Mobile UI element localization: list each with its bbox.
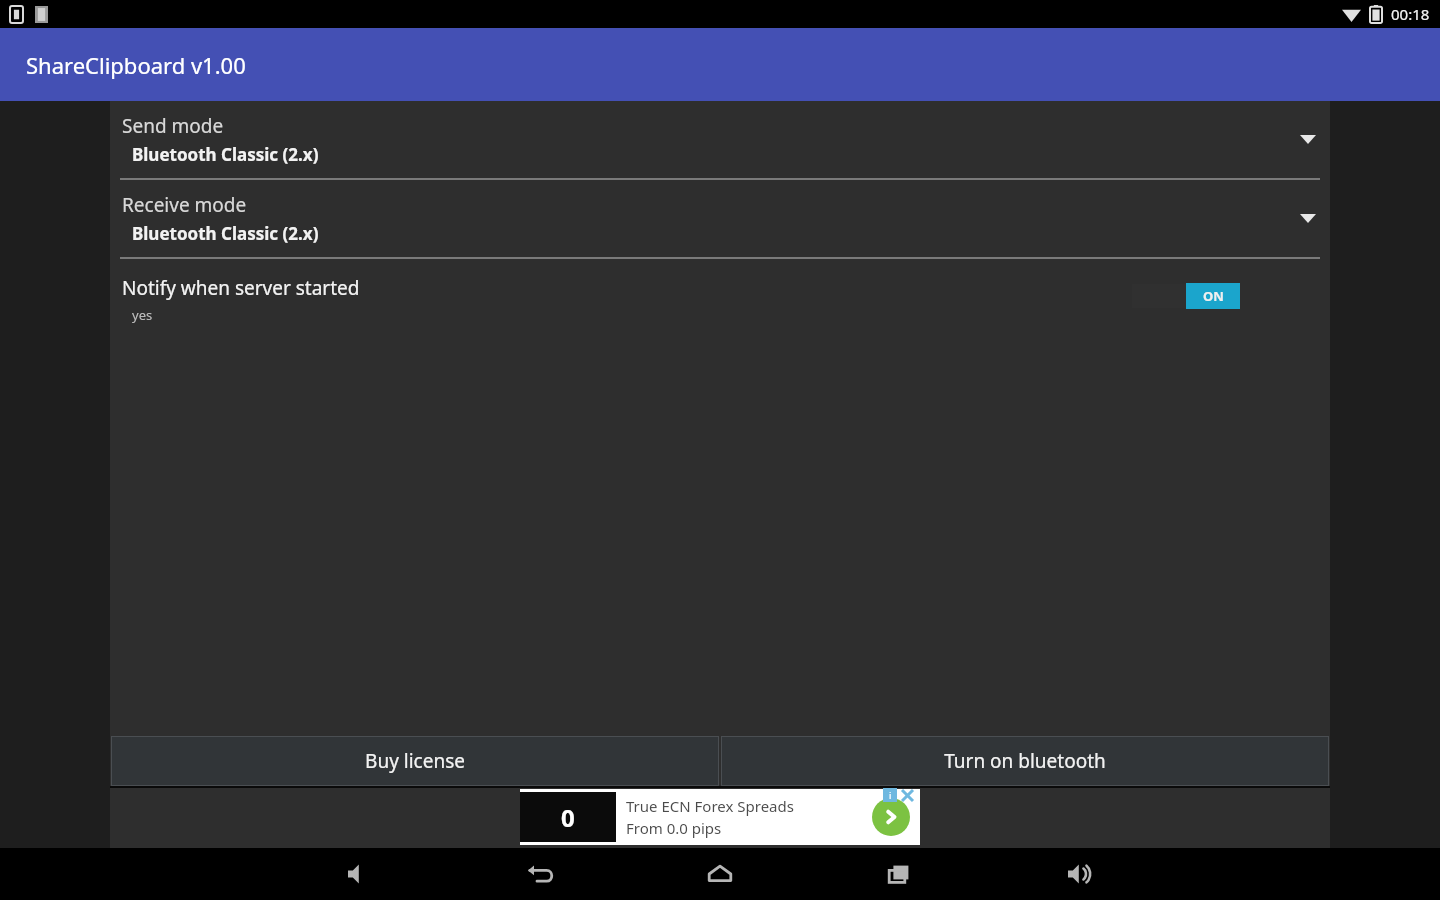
button[interactable]: Open ad [872, 798, 910, 836]
staticText: Turn on bluetooth [944, 748, 1106, 774]
staticText: yes [132, 306, 153, 324]
staticText: Bluetooth Classic (2.x) [132, 143, 319, 166]
button[interactable]: Receive mode [110, 180, 1330, 257]
staticText: Send mode [122, 113, 224, 139]
button[interactable]: Buy license [111, 736, 719, 786]
button[interactable]: Send mode [110, 101, 1330, 178]
staticText: Buy license [365, 748, 465, 774]
staticText: Notify when server started [122, 275, 360, 301]
button[interactable]: Turn on bluetooth [721, 736, 1329, 786]
button[interactable]: Back [510, 848, 570, 900]
staticText: i [889, 789, 892, 801]
button[interactable]: Close ad [900, 788, 914, 802]
staticText: Bluetooth Classic (2.x) [132, 222, 319, 245]
button[interactable]: Volume up [1050, 848, 1110, 900]
staticText: 00:18 [1391, 4, 1430, 24]
button[interactable]: 0 [520, 789, 920, 845]
staticText: 0 [561, 801, 575, 834]
button[interactable]: Home [690, 848, 750, 900]
staticText: From 0.0 pips [626, 818, 722, 838]
button[interactable]: Notify when server started [110, 259, 1330, 339]
button[interactable]: Ad info [883, 788, 897, 802]
button[interactable]: Volume down [330, 848, 390, 900]
staticText: ShareClipboard v1.00 [26, 50, 246, 80]
button[interactable]: Notify when server started toggle, on [1132, 283, 1240, 309]
staticText: True ECN Forex Spreads [626, 796, 794, 816]
staticText: Receive mode [122, 192, 247, 218]
staticText: ON [1203, 287, 1224, 305]
button[interactable]: Recent apps [870, 848, 930, 900]
